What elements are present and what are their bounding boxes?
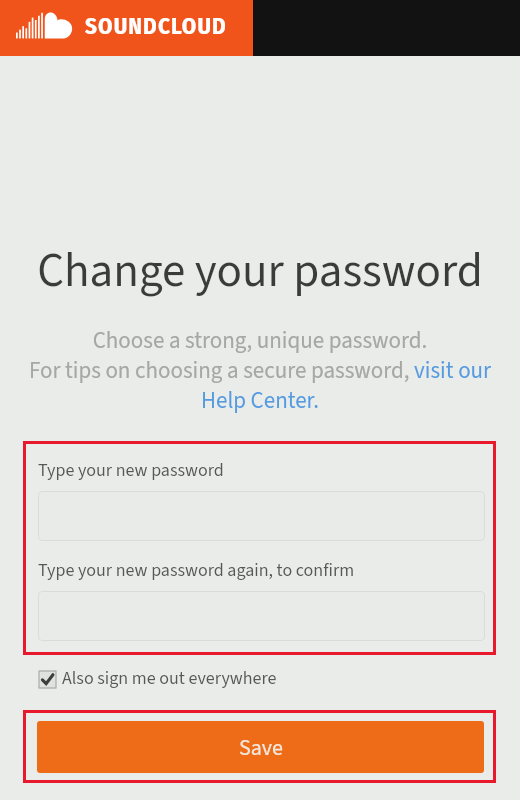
- button[interactable]: Password field: [38, 591, 485, 641]
- staticText: Save: [239, 732, 283, 763]
- staticText: Type your new password: [38, 458, 224, 484]
- staticText: Change your password: [0, 238, 520, 305]
- button[interactable]: Save: [37, 721, 484, 773]
- other: SoundCloud: [15, 10, 73, 39]
- button[interactable]: Also sign me out everywhere: [39, 666, 277, 692]
- button[interactable]: Password field: [38, 491, 485, 541]
- staticText: Choose a strong, unique password. For ti…: [11, 324, 509, 417]
- staticText: Type your new password again, to confirm: [38, 558, 355, 584]
- button[interactable]: SoundCloud: [0, 0, 253, 56]
- staticText: SOUNDCLOUD: [85, 12, 227, 40]
- staticText: Also sign me out everywhere: [62, 666, 277, 692]
